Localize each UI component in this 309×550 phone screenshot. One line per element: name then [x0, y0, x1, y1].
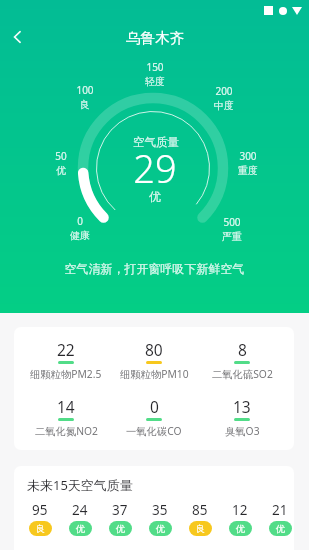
button[interactable]: 24	[60, 501, 100, 536]
staticText: 严重	[222, 230, 242, 242]
staticText: 未来15天空气质量	[27, 476, 133, 494]
staticText: 14	[57, 396, 75, 417]
staticText: 12	[232, 501, 248, 519]
staticText: 50	[55, 149, 67, 163]
staticText: 良	[196, 523, 205, 534]
staticText: 臭氧O3	[225, 424, 260, 438]
button[interactable]: 13	[198, 396, 286, 438]
staticText: 优	[76, 523, 85, 534]
staticText: 细颗粒物PM10	[120, 367, 189, 381]
staticText: 95	[32, 501, 48, 519]
button[interactable]: 37	[100, 501, 140, 536]
button[interactable]: 95	[20, 501, 60, 536]
staticText: 细颗粒物PM2.5	[30, 367, 102, 381]
staticText: 健康	[70, 229, 90, 241]
staticText: 500	[223, 215, 241, 229]
button[interactable]: 8	[198, 339, 286, 381]
staticText: 85	[192, 501, 208, 519]
button[interactable]: 85	[180, 501, 220, 536]
staticText: 空气质量	[133, 135, 179, 149]
button[interactable]: 21	[260, 501, 294, 536]
staticText: 中度	[214, 99, 234, 111]
staticText: 良	[36, 523, 45, 534]
button[interactable]: 22	[22, 339, 110, 381]
staticText: 24	[72, 501, 88, 519]
staticText: 优	[56, 164, 66, 176]
staticText: 300	[239, 149, 257, 163]
button[interactable]: 12	[220, 501, 260, 536]
staticText: 优	[156, 523, 165, 534]
staticText: 轻度	[145, 75, 165, 87]
staticText: 21	[272, 501, 288, 519]
staticText: 150	[146, 60, 164, 74]
staticText: 8	[238, 339, 247, 360]
staticText: 优	[236, 523, 245, 534]
staticText: 乌鲁木齐	[126, 29, 184, 47]
staticText: 22	[57, 339, 75, 360]
staticText: 0	[150, 396, 159, 417]
staticText: 二氧化硫SO2	[212, 367, 273, 381]
staticText: 优	[149, 189, 161, 204]
staticText: 空气清新，打开窗呼吸下新鲜空气	[0, 261, 309, 276]
staticText: 一氧化碳CO	[126, 424, 182, 438]
staticText: 200	[215, 84, 233, 98]
staticText: 良	[80, 98, 90, 110]
staticText: 35	[152, 501, 168, 519]
button[interactable]: 80	[110, 339, 198, 381]
staticText: 优	[116, 523, 125, 534]
staticText: 29	[133, 142, 177, 192]
staticText: 二氧化氮NO2	[35, 424, 98, 438]
staticText: 80	[145, 339, 163, 360]
staticText: 13	[233, 396, 251, 417]
staticText: 100	[76, 83, 94, 97]
staticText: 0	[77, 214, 83, 228]
button[interactable]: Back	[1, 21, 33, 53]
staticText: 37	[112, 501, 128, 519]
button[interactable]: 0	[110, 396, 198, 438]
staticText: 优	[276, 523, 285, 534]
button[interactable]: 14	[22, 396, 110, 438]
staticText: 重度	[238, 164, 258, 176]
button[interactable]: 35	[140, 501, 180, 536]
